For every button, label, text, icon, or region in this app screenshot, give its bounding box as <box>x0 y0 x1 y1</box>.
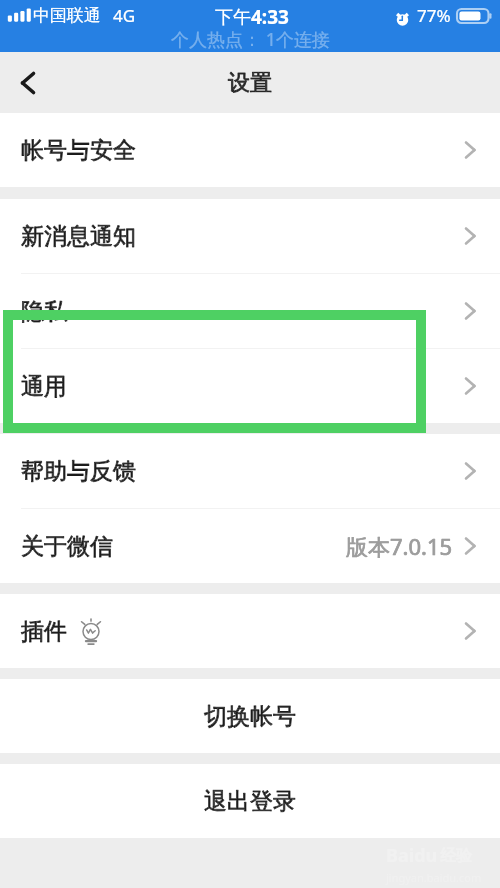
button[interactable]: 新消息通知 <box>0 199 500 274</box>
staticText: 隐私 <box>21 297 67 326</box>
staticText: 设置 <box>228 69 272 97</box>
button[interactable]: 退出登录 <box>0 764 500 838</box>
button[interactable]: 通用 <box>0 349 500 423</box>
staticText: 切换帐号 <box>204 702 296 731</box>
staticText: 帐号与安全 <box>21 136 136 165</box>
staticText: 隐私 <box>21 297 67 326</box>
staticText: 切换帐号 <box>204 702 296 731</box>
staticText: 退出登录 <box>204 787 296 816</box>
staticText: 个人热点： 1个连接 <box>171 27 330 52</box>
staticText: 帮助与反馈 <box>21 457 136 486</box>
staticText: 设置 <box>228 69 272 97</box>
staticText: 帮助与反馈 <box>21 457 136 486</box>
button[interactable]: 帮助与反馈 <box>0 434 500 509</box>
staticText: 新消息通知 <box>21 222 136 251</box>
staticText: 帐号与安全 <box>21 136 136 165</box>
staticText: 77% <box>417 4 451 27</box>
button[interactable]: Back <box>0 55 56 111</box>
staticText: 通用 <box>21 372 67 401</box>
staticText: 插件 <box>21 617 67 646</box>
staticText: 4G <box>113 4 136 27</box>
button[interactable]: 插件 <box>0 594 500 668</box>
staticText: 退出登录 <box>204 787 296 816</box>
button[interactable]: 隐私 <box>0 274 500 349</box>
staticText: 新消息通知 <box>21 222 136 251</box>
staticText: 下午 <box>215 6 251 29</box>
button[interactable]: 帐号与安全 <box>0 113 500 187</box>
staticText: 中国联通 <box>33 5 101 26</box>
button[interactable]: 关于微信 <box>0 509 500 583</box>
staticText: 版本7.0.15 <box>346 531 453 561</box>
staticText: 关于微信 <box>21 532 113 561</box>
staticText: 插件 <box>21 617 67 646</box>
staticText: 版本7.0.15 <box>346 531 453 561</box>
staticText: 关于微信 <box>21 532 113 561</box>
button[interactable]: 切换帐号 <box>0 679 500 753</box>
staticText: 4:33 <box>251 4 289 30</box>
staticText: 通用 <box>21 372 67 401</box>
